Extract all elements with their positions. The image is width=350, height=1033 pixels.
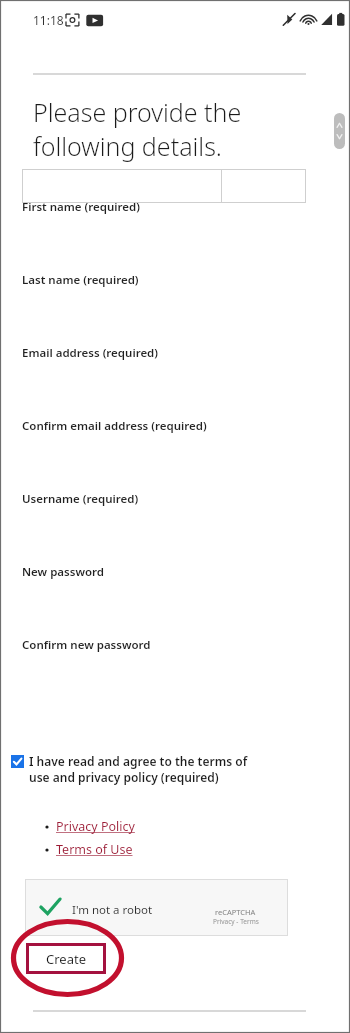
staticText: following details. <box>33 129 222 163</box>
button[interactable]: Create <box>26 943 106 974</box>
button[interactable] <box>22 169 306 203</box>
staticText: I have read and agree to the terms of <box>29 753 248 769</box>
other: Agree to terms checkbox <box>11 755 24 768</box>
staticText: Create <box>46 950 86 968</box>
staticText: I'm not a robot <box>72 902 153 918</box>
staticText: Last name (required) <box>22 272 139 288</box>
staticText: Confirm email address (required) <box>22 418 207 434</box>
button[interactable] <box>22 169 222 203</box>
button[interactable] <box>22 169 222 203</box>
button[interactable]: Privacy Policy <box>42 818 135 835</box>
staticText: use and privacy policy (required) <box>29 769 219 785</box>
button[interactable] <box>22 169 222 203</box>
button[interactable]: I'm not a robot, verified <box>25 879 288 936</box>
button[interactable] <box>22 169 222 203</box>
button[interactable]: Agree to terms checkbox <box>11 753 301 785</box>
staticText: 11:18 <box>33 12 64 28</box>
staticText: Privacy Policy <box>56 818 135 835</box>
staticText: New password <box>22 564 105 580</box>
button[interactable] <box>22 169 306 203</box>
staticText: Username (required) <box>22 491 139 507</box>
staticText: Please provide the <box>33 95 242 129</box>
staticText: First name (required) <box>22 199 141 215</box>
button[interactable]: Terms of Use <box>42 841 133 858</box>
staticText: reCAPTCHA <box>215 907 256 917</box>
staticText: Confirm new password <box>22 637 151 653</box>
staticText: Email address (required) <box>22 345 159 361</box>
staticText: Terms of Use <box>56 841 133 858</box>
staticText: Privacy - Terms <box>213 917 259 926</box>
other: I'm not a robot, verified <box>38 896 62 918</box>
button[interactable] <box>22 169 306 203</box>
other: Scroll <box>334 113 345 149</box>
